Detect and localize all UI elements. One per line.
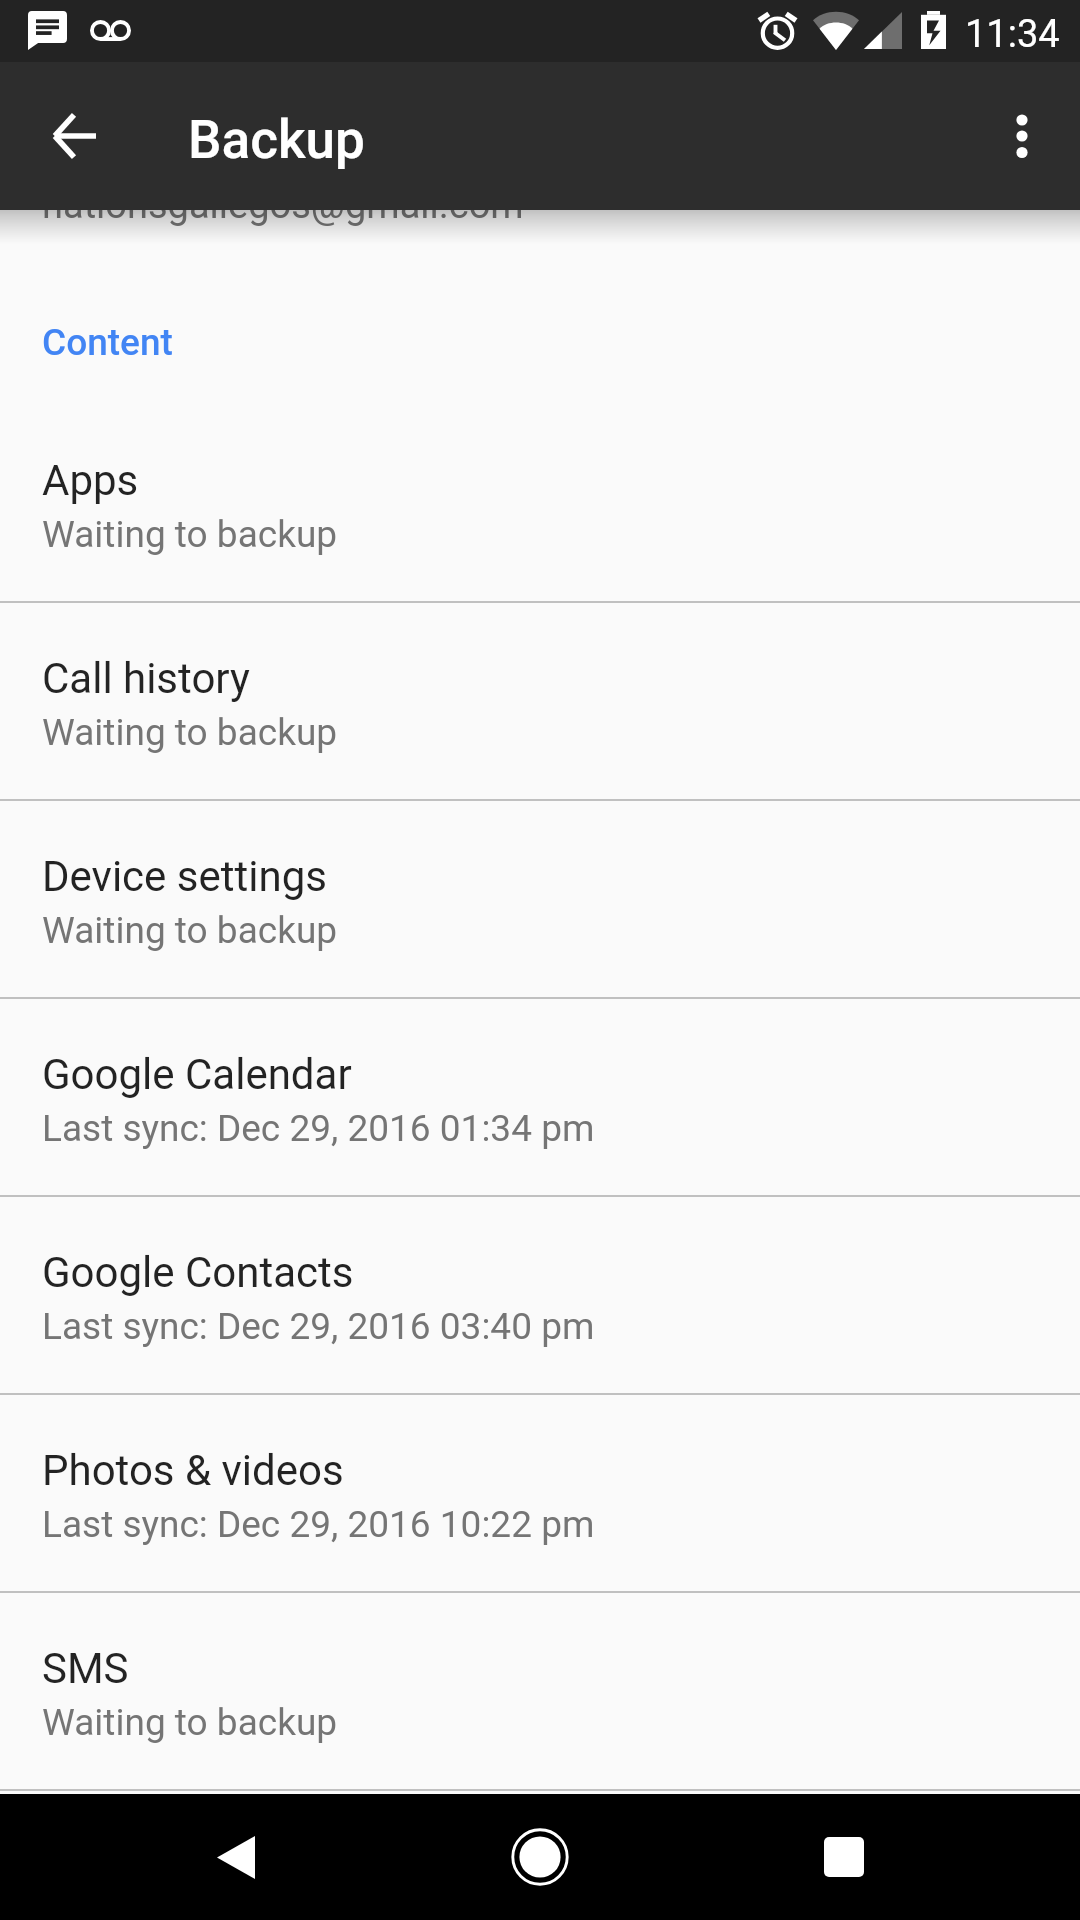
button[interactable]: Recent apps — [784, 1797, 904, 1917]
staticText: Backup — [188, 109, 365, 171]
staticText: Google Contacts — [42, 1248, 354, 1297]
button[interactable]: Navigate up — [26, 88, 122, 184]
staticText: Device settings — [42, 852, 327, 901]
staticText: 11:34 — [965, 12, 1060, 57]
button[interactable]: Device settings — [0, 799, 1080, 997]
button[interactable]: More options — [974, 88, 1070, 184]
button[interactable]: Call history — [0, 601, 1080, 799]
staticText: Last sync: Dec 29, 2016 03:40 pm — [42, 1305, 595, 1348]
staticText: Call history — [42, 654, 250, 703]
button[interactable]: Apps — [0, 403, 1080, 601]
button[interactable]: Photos & videos — [0, 1393, 1080, 1591]
staticText: Content — [42, 321, 173, 364]
staticText: Waiting to backup — [42, 909, 338, 952]
staticText: Last sync: Dec 29, 2016 10:22 pm — [42, 1503, 595, 1546]
staticText: Photos & videos — [42, 1446, 344, 1495]
staticText: Waiting to backup — [42, 1701, 338, 1744]
staticText: Waiting to backup — [42, 513, 338, 556]
staticText: Apps — [42, 456, 139, 505]
staticText: Last sync: Dec 29, 2016 01:34 pm — [42, 1107, 595, 1150]
staticText: Google Calendar — [42, 1050, 352, 1099]
button[interactable]: Back — [176, 1797, 296, 1917]
button[interactable]: Google Contacts — [0, 1195, 1080, 1393]
staticText: nationsgallegos@gmail.com — [42, 183, 524, 228]
staticText: SMS — [42, 1644, 129, 1693]
staticText: Waiting to backup — [42, 711, 338, 754]
button[interactable]: SMS — [0, 1591, 1080, 1789]
button[interactable]: Google Calendar — [0, 997, 1080, 1195]
button[interactable]: Home — [480, 1797, 600, 1917]
